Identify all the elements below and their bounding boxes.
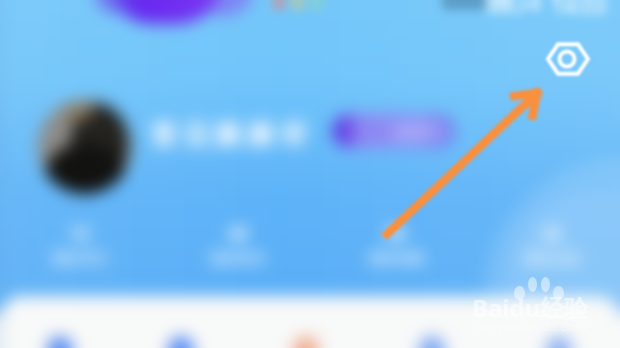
staticText: 我的足迹 <box>524 250 580 268</box>
staticText: 我的收藏 <box>368 250 424 268</box>
staticText: 32 <box>542 222 562 245</box>
staticText: 14:03 <box>552 0 606 21</box>
button[interactable]: Settings <box>544 35 592 83</box>
staticText: 会员中心 <box>394 123 446 139</box>
button[interactable]: 96 <box>346 222 446 268</box>
button[interactable]: Home <box>47 336 73 348</box>
button[interactable]: Messages <box>419 336 445 348</box>
button[interactable]: 48 <box>188 222 288 268</box>
staticText: 我的关注 <box>52 250 108 268</box>
staticText: Baidu经验 <box>472 291 589 324</box>
staticText: 48 <box>228 222 248 245</box>
button[interactable]: 32 <box>502 222 602 268</box>
staticText: 雪 花 飘 飘 呀 <box>150 116 308 152</box>
button[interactable]: Avatar <box>38 100 132 194</box>
button[interactable]: Profile <box>546 336 572 348</box>
button[interactable]: 会员中心 <box>333 114 455 148</box>
staticText: jingyan.baidu.com <box>474 317 587 335</box>
staticText: 12 <box>70 222 90 245</box>
staticText: 96 <box>386 222 406 245</box>
button[interactable]: 12 <box>30 222 130 268</box>
staticText: 我的粉丝 <box>210 250 266 268</box>
button[interactable]: Create <box>293 336 319 348</box>
staticText: 4 <box>530 0 541 17</box>
button[interactable]: Discover <box>168 336 194 348</box>
